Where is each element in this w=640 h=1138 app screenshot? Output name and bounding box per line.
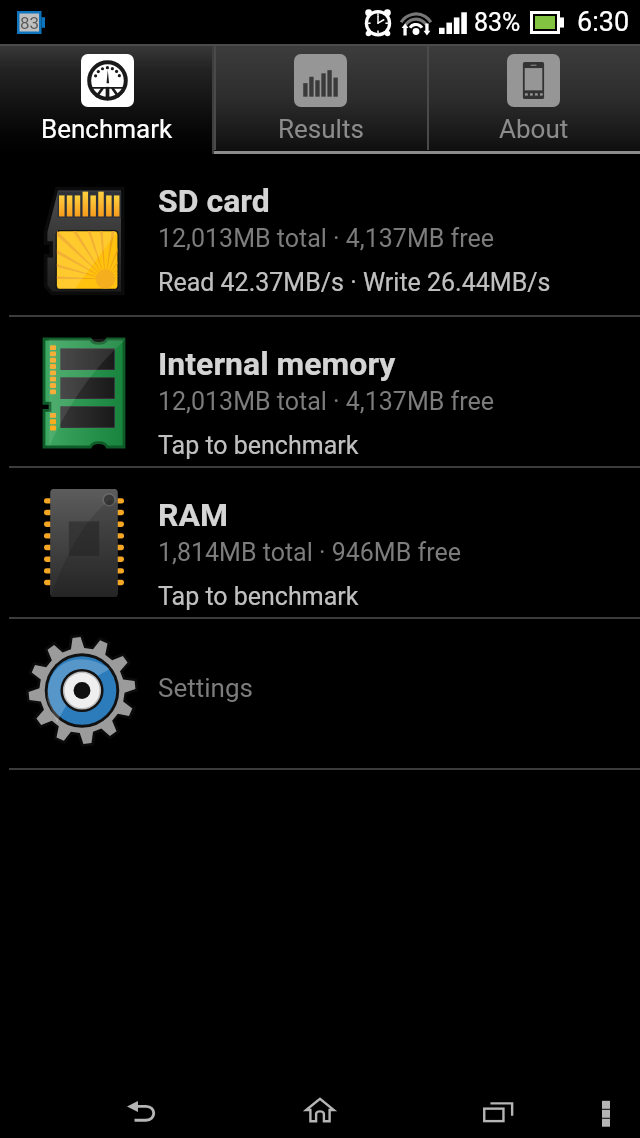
staticText: Settings <box>158 673 253 703</box>
staticText: Internal memory <box>158 345 396 383</box>
staticText: RAM <box>158 496 228 534</box>
button[interactable]: About <box>427 44 640 154</box>
button[interactable]: Internal memory <box>0 317 640 466</box>
button[interactable]: Results <box>214 44 427 154</box>
button[interactable]: Benchmark <box>0 44 214 154</box>
staticText: SD card <box>158 182 270 220</box>
staticText: 83 <box>20 13 40 33</box>
button[interactable]: Settings <box>0 619 640 768</box>
button[interactable]: More options <box>560 1060 640 1138</box>
staticText: Tap to benchmark <box>158 582 359 611</box>
button[interactable]: SD card <box>0 154 640 315</box>
staticText: Tap to benchmark <box>158 431 359 460</box>
staticText: 1,814MB total · 946MB free <box>158 538 461 567</box>
staticText: 12,013MB total · 4,137MB free <box>158 224 494 253</box>
button[interactable]: Recent apps <box>436 1060 560 1138</box>
staticText: Read 42.37MB/s · Write 26.44MB/s <box>158 268 551 297</box>
button[interactable]: RAM <box>0 468 640 617</box>
staticText: About <box>499 114 569 144</box>
button[interactable]: Back <box>80 1060 204 1138</box>
button[interactable]: Home <box>258 1060 382 1138</box>
staticText: Benchmark <box>41 114 173 144</box>
staticText: 83% <box>474 8 521 37</box>
staticText: 12,013MB total · 4,137MB free <box>158 387 494 416</box>
staticText: 6:30 <box>577 6 630 38</box>
staticText: Results <box>278 114 364 144</box>
